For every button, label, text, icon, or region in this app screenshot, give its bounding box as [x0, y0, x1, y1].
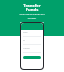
button[interactable] [23, 56, 41, 59]
staticText: Amount [23, 47, 30, 49]
staticText: Send money quickly and securely to anyon… [17, 13, 47, 28]
staticText: Transfer Funds [23, 3, 41, 13]
staticText: To [23, 39, 25, 41]
staticText: From [23, 31, 28, 33]
